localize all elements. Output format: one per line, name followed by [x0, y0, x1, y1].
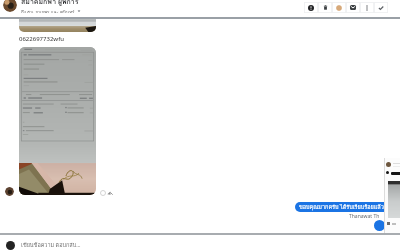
button[interactable]: Mark as unread: [304, 2, 318, 13]
button[interactable]: More options: [360, 2, 374, 13]
button[interactable]: Profile photo: [3, 0, 17, 12]
button[interactable]: Photo attachment: [19, 2, 96, 32]
button[interactable]: Mark as read: [346, 2, 360, 13]
button[interactable]: Report spam: [332, 2, 346, 13]
staticText: สมาคมกีฬา ผู้พิการ: [21, 0, 79, 7]
button[interactable]: Sender avatar: [374, 220, 385, 231]
staticText: Thanawat Th: [349, 213, 380, 220]
button[interactable]: React: [100, 190, 106, 196]
button[interactable]: Document photo: [19, 47, 96, 195]
button[interactable]: Delete: [318, 2, 332, 13]
button[interactable]: Move to done: [374, 2, 388, 13]
button[interactable]: ขอบคุณมากครับ ได้รับเรียบร้อยแล้วนะครับ: [295, 202, 392, 212]
button[interactable]: Reply: [107, 190, 113, 196]
staticText: เขียนข้อความ ตอบกลับ...: [21, 241, 81, 250]
staticText: 0622697732wfu: [19, 35, 65, 43]
button[interactable]: Chat window: [384, 158, 400, 250]
staticText: ถึง ฉัน, กนกพร และ ชนินทร์: [21, 9, 75, 13]
staticText: ขอบคุณมากครับ ได้รับเรียบร้อยแล้วนะครับ: [299, 203, 392, 212]
button[interactable]: เขียนข้อความ ตอบกลับ...: [6, 241, 81, 250]
